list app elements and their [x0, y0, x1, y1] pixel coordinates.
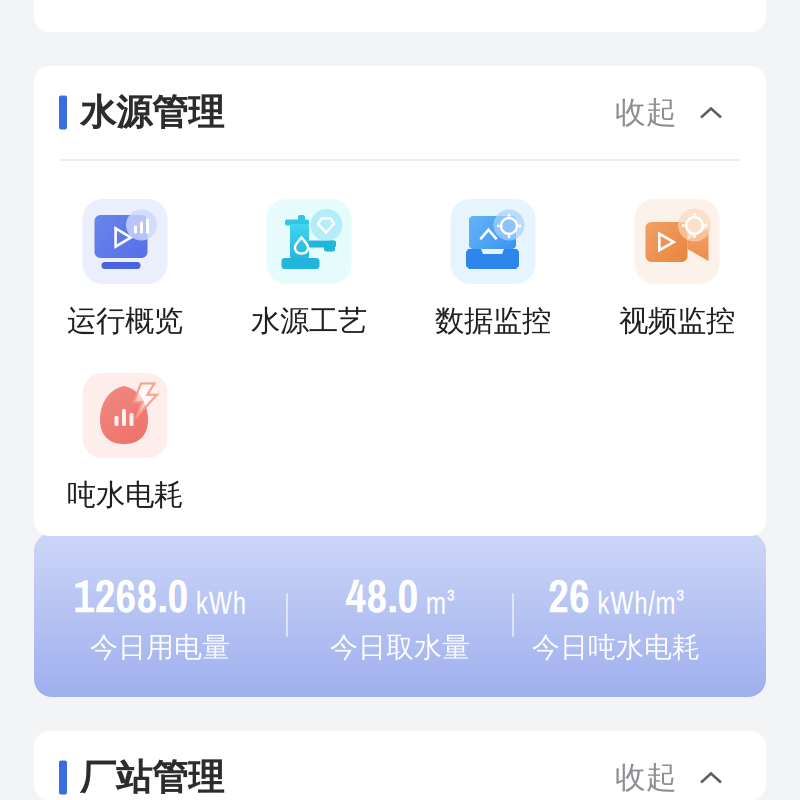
- staticText: 水源工艺: [251, 303, 367, 339]
- button[interactable]: 运行概览: [33, 199, 217, 339]
- button[interactable]: 视频监控: [585, 199, 769, 339]
- staticText: 收起: [615, 759, 677, 796]
- staticText: 吨水电耗: [67, 477, 183, 513]
- staticText: 厂站管理: [80, 755, 224, 800]
- staticText: 水源管理: [80, 90, 224, 135]
- button[interactable]: 数据监控: [401, 199, 585, 339]
- button[interactable]: 收起: [615, 749, 723, 800]
- staticText: 运行概览: [67, 303, 183, 339]
- staticText: 48.0: [345, 565, 418, 626]
- button[interactable]: 吨水电耗: [33, 373, 217, 513]
- staticText: 数据监控: [435, 303, 551, 339]
- staticText: 收起: [615, 94, 677, 131]
- staticText: kWh/m³: [597, 582, 684, 623]
- staticText: 26: [548, 565, 590, 626]
- button[interactable]: 水源工艺: [217, 199, 401, 339]
- button[interactable]: 收起: [615, 84, 723, 141]
- staticText: 视频监控: [619, 303, 735, 339]
- staticText: 今日吨水电耗: [532, 630, 700, 665]
- staticText: kWh: [195, 582, 246, 623]
- staticText: m³: [425, 582, 454, 623]
- staticText: 今日用电量: [90, 630, 230, 665]
- staticText: 1268.0: [73, 565, 188, 626]
- staticText: 今日取水量: [330, 630, 470, 665]
